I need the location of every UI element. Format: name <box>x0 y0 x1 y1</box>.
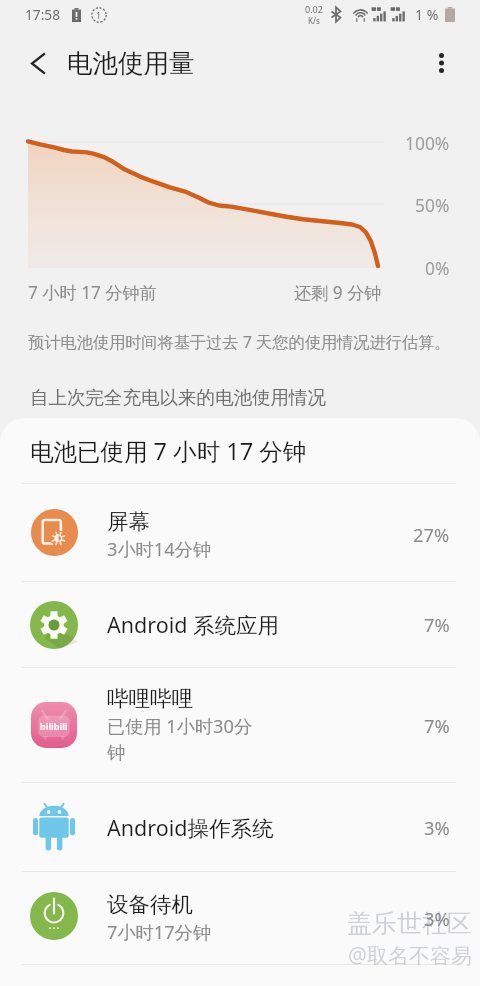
staticText: 已使用 1小时30分 钟 <box>107 714 253 765</box>
staticText: K/s <box>308 15 320 26</box>
staticText: 3% <box>424 815 450 840</box>
staticText: bilibili <box>40 720 68 732</box>
staticText: 电池使用量 <box>67 47 195 79</box>
staticText: 7% <box>424 612 450 637</box>
staticText: 1 % <box>415 5 439 24</box>
staticText: 盖乐世社区 <box>347 908 472 939</box>
button[interactable]: Android 系统应用 <box>0 582 480 667</box>
staticText: 1 <box>96 9 102 21</box>
staticText: 50% <box>415 193 450 217</box>
staticText: 电池已使用 7 小时 17 分钟 <box>30 435 307 467</box>
staticText: 屏幕 <box>107 508 150 535</box>
staticText: 0.02 <box>305 3 323 15</box>
staticText: 3小时14分钟 <box>107 537 211 562</box>
staticText: 7% <box>424 713 450 738</box>
button[interactable]: More options <box>413 35 469 91</box>
staticText: 7 小时 17 分钟前 <box>28 281 157 304</box>
staticText: 7小时17分钟 <box>107 920 211 945</box>
staticText: 0% <box>425 256 450 280</box>
staticText: 27% <box>413 522 450 547</box>
button[interactable]: Back <box>10 35 66 91</box>
staticText: Android操作系统 <box>107 813 274 842</box>
staticText: 17:58 <box>25 5 60 24</box>
staticText: 100% <box>405 131 450 155</box>
button[interactable]: 设备待机 <box>0 872 480 964</box>
staticText: 预计电池使用时间将基于过去 7 天您的使用情况进行估算。 <box>28 331 451 353</box>
staticText: 哔哩哔哩 <box>107 685 193 712</box>
button[interactable]: Android操作系统 <box>0 783 480 871</box>
staticText: 3% <box>424 906 450 931</box>
button[interactable]: 屏幕 <box>0 488 480 581</box>
staticText: Android 系统应用 <box>107 610 280 639</box>
staticText: @取名不容易 <box>348 941 472 970</box>
staticText: 设备待机 <box>107 891 193 918</box>
button[interactable]: bilibili <box>0 668 480 782</box>
staticText: 自上次完全充电以来的电池使用情况 <box>30 386 326 409</box>
staticText: 还剩 9 分钟 <box>294 281 382 304</box>
